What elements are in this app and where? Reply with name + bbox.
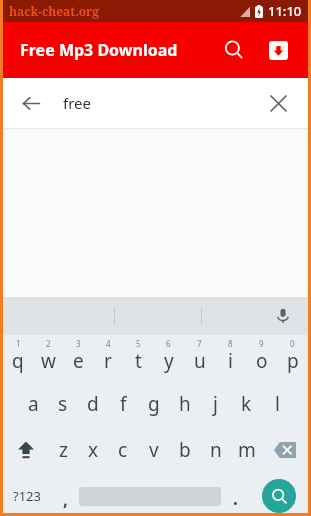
staticText: 6	[166, 338, 171, 349]
staticText: 7	[197, 338, 202, 349]
button[interactable]: g	[138, 381, 169, 427]
button[interactable]: l	[262, 381, 293, 427]
staticText: free	[63, 93, 258, 113]
button[interactable]: k	[231, 381, 262, 427]
button[interactable]: m	[231, 427, 262, 473]
staticText: h	[179, 391, 191, 417]
staticText: f	[120, 391, 127, 417]
button[interactable]: f	[108, 381, 138, 427]
button[interactable]: 8	[215, 335, 246, 381]
staticText: z	[59, 437, 68, 463]
button[interactable]: v	[138, 427, 169, 473]
staticText: b	[179, 437, 191, 463]
button[interactable]: b	[169, 427, 200, 473]
staticText: .	[233, 487, 238, 510]
button[interactable]: Back	[3, 78, 308, 128]
button[interactable]: Search	[212, 28, 256, 72]
button[interactable]: 9	[246, 335, 277, 381]
staticText: 5	[136, 338, 141, 349]
staticText: j	[213, 391, 218, 417]
staticText: e	[73, 348, 84, 374]
staticText: x	[88, 437, 99, 463]
staticText: p	[287, 348, 299, 374]
button[interactable]: h	[169, 381, 200, 427]
staticText: 4	[106, 338, 111, 349]
staticText: 11:10	[268, 2, 302, 20]
button[interactable]: ?123	[3, 473, 51, 516]
staticText: 9	[259, 338, 264, 349]
button[interactable]: z	[48, 427, 78, 473]
staticText: m	[238, 437, 256, 463]
staticText: hack-cheat.org	[9, 3, 100, 19]
button[interactable]: Search	[249, 473, 308, 516]
button[interactable]: 4	[93, 335, 123, 381]
staticText: v	[149, 437, 159, 463]
staticText: s	[58, 391, 68, 417]
staticText: ,	[63, 488, 68, 511]
staticText: t	[135, 348, 142, 374]
staticText: l	[275, 391, 280, 417]
button[interactable]: 5	[123, 335, 153, 381]
staticText: a	[28, 391, 39, 417]
button[interactable]: x	[78, 427, 108, 473]
staticText: g	[148, 391, 160, 417]
button[interactable]: d	[78, 381, 108, 427]
staticText: 2	[46, 338, 51, 349]
button[interactable]: 0	[277, 335, 308, 381]
staticText: 3	[76, 338, 81, 349]
button[interactable]: c	[108, 427, 138, 473]
button[interactable]: ,	[51, 473, 79, 516]
staticText: 1	[16, 338, 21, 349]
button[interactable]: Voice input	[266, 299, 300, 333]
button[interactable]: 2	[33, 335, 63, 381]
button[interactable]: 7	[184, 335, 215, 381]
staticText: q	[12, 348, 24, 374]
button[interactable]: 6	[153, 335, 184, 381]
staticText: d	[87, 391, 99, 417]
button[interactable]: Shift	[3, 427, 48, 473]
button[interactable]: a	[18, 381, 48, 427]
button[interactable]: n	[200, 427, 231, 473]
button[interactable]	[79, 473, 221, 516]
button[interactable]: .	[221, 473, 249, 516]
staticText: n	[210, 437, 222, 463]
staticText: ?123	[13, 487, 41, 505]
button[interactable]: 1	[3, 335, 33, 381]
button[interactable]: 3	[63, 335, 93, 381]
staticText: i	[228, 348, 233, 374]
staticText: 0	[290, 338, 295, 349]
button[interactable]: j	[200, 381, 231, 427]
staticText: y	[164, 348, 174, 374]
button[interactable]: Clear	[258, 83, 298, 123]
button[interactable]: Backspace	[262, 427, 308, 473]
staticText: k	[241, 391, 252, 417]
staticText: u	[194, 348, 206, 374]
staticText: r	[104, 348, 112, 374]
staticText: o	[256, 348, 268, 374]
button[interactable]: Downloads	[256, 28, 300, 72]
staticText: w	[41, 348, 56, 374]
staticText: 8	[228, 338, 233, 349]
button[interactable]: Back	[11, 83, 51, 123]
button[interactable]: s	[48, 381, 78, 427]
staticText: Free Mp3 Download	[20, 39, 178, 61]
staticText: c	[118, 437, 128, 463]
